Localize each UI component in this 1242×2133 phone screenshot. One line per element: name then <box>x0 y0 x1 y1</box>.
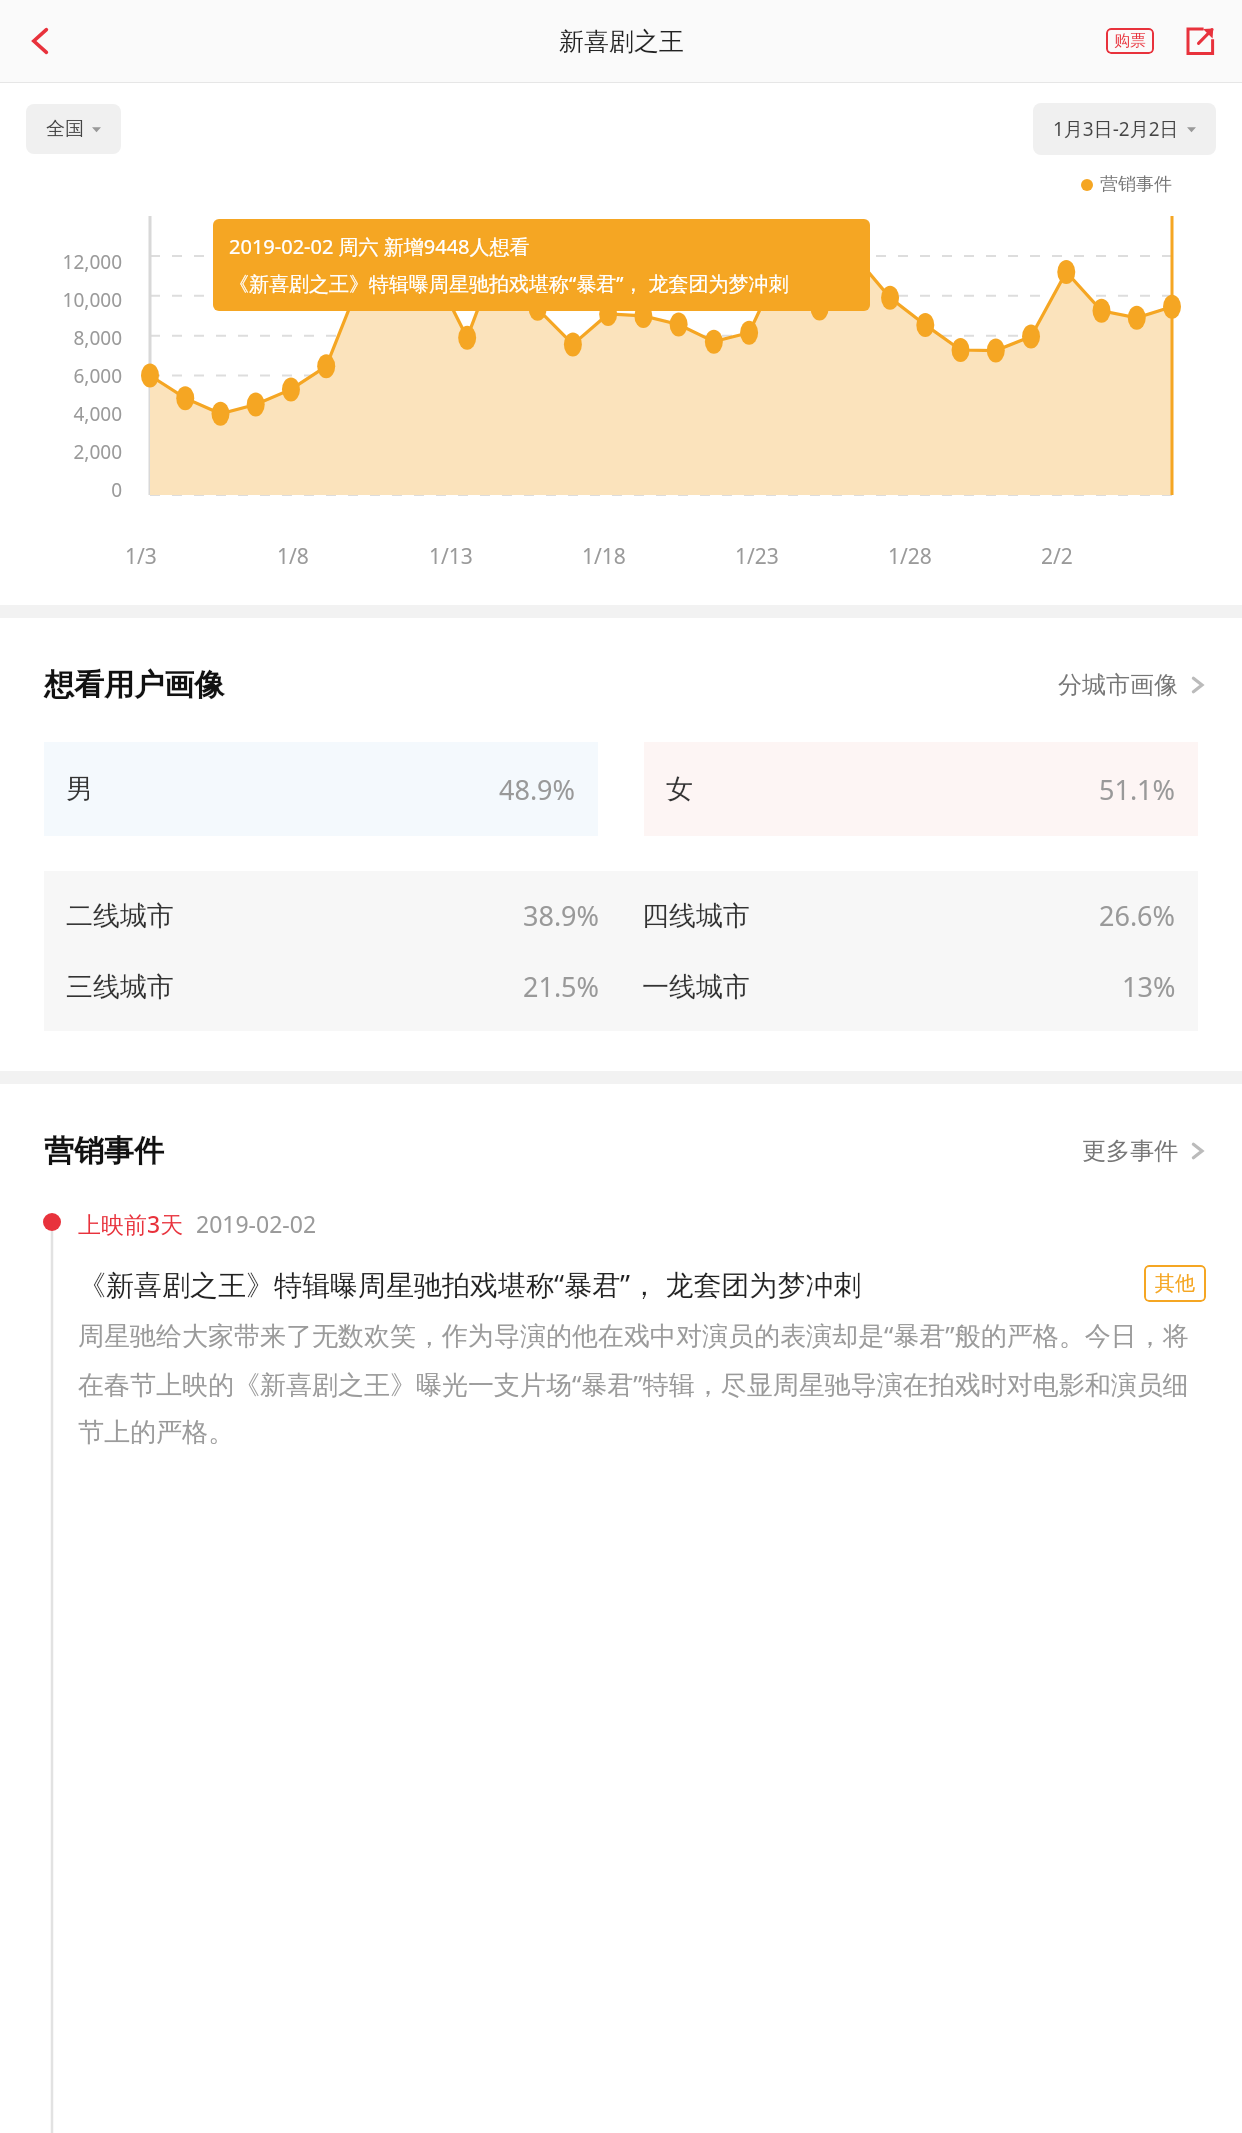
staticText: 《新喜剧之王》特辑曝周星驰拍戏堪称“暴君”， 龙套团为梦冲刺 <box>78 1265 1128 1303</box>
button[interactable]: 全国 <box>26 104 121 154</box>
staticText: 26.6% <box>1099 897 1176 934</box>
button[interactable]: Share <box>1180 21 1220 61</box>
staticText: 一线城市 <box>642 970 750 1004</box>
staticText: 0 <box>22 477 122 503</box>
staticText: 12,000 <box>22 249 122 275</box>
staticText: 1/28 <box>888 542 1041 571</box>
staticText: 4,000 <box>22 401 122 427</box>
staticText: 想看用户画像 <box>44 666 224 704</box>
staticText: 其他 <box>1155 1271 1195 1296</box>
staticText: 2/2 <box>1041 542 1194 571</box>
staticText: 10,000 <box>22 287 122 313</box>
staticText: 1/18 <box>582 542 735 571</box>
button[interactable]: 分城市画像 <box>1058 670 1206 700</box>
staticText: 1/23 <box>735 542 888 571</box>
staticText: 全国 <box>46 117 84 141</box>
button[interactable]: Back <box>10 10 72 72</box>
button[interactable]: 购票 <box>1106 28 1154 54</box>
staticText: 6,000 <box>22 363 122 389</box>
button[interactable]: 其他 <box>1144 1265 1206 1302</box>
staticText: 更多事件 <box>1082 1136 1178 1166</box>
staticText: 四线城市 <box>642 899 750 933</box>
staticText: 上映前3天 <box>78 1208 184 1239</box>
staticText: 48.9% <box>499 771 576 808</box>
staticText: 分城市画像 <box>1058 670 1178 700</box>
staticText: 1月3日-2月2日 <box>1053 116 1179 142</box>
staticText: 13% <box>1122 968 1176 1005</box>
button[interactable]: 1月3日-2月2日 <box>1033 103 1216 155</box>
staticText: 1/13 <box>429 542 582 571</box>
staticText: 8,000 <box>22 325 122 351</box>
staticText: 2,000 <box>22 439 122 465</box>
button[interactable]: 男 <box>44 742 598 836</box>
staticText: 新喜剧之王 <box>559 26 684 57</box>
staticText: 周星驰给大家带来了无数欢笑，作为导演的他在戏中对演员的表演却是“暴君”般的严格。… <box>78 1317 1206 1449</box>
staticText: 营销事件 <box>1100 173 1172 196</box>
staticText: 营销事件 <box>44 1132 164 1170</box>
staticText: 1/8 <box>277 542 429 571</box>
staticText: 二线城市 <box>66 899 174 933</box>
staticText: 38.9% <box>523 897 600 934</box>
button[interactable]: 更多事件 <box>1082 1136 1206 1166</box>
staticText: 男 <box>66 772 93 806</box>
staticText: 2019-02-02 <box>196 1208 317 1239</box>
staticText: 2019-02-02 周六 新增9448人想看 <box>229 233 530 260</box>
staticText: 购票 <box>1114 31 1146 51</box>
staticText: 女 <box>666 772 693 806</box>
staticText: 51.1% <box>1099 771 1176 808</box>
staticText: 三线城市 <box>66 970 174 1004</box>
staticText: 21.5% <box>523 968 600 1005</box>
staticText: 1/3 <box>125 542 277 571</box>
button[interactable]: 女 <box>644 742 1198 836</box>
staticText: 《新喜剧之王》特辑曝周星驰拍戏堪称“暴君”， 龙套团为梦冲刺 <box>229 270 789 297</box>
